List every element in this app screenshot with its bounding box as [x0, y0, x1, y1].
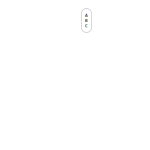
staticText: C	[85, 23, 88, 28]
button[interactable]: Options	[81, 8, 91, 32]
staticText: A	[85, 12, 88, 18]
staticText: B	[85, 18, 88, 23]
